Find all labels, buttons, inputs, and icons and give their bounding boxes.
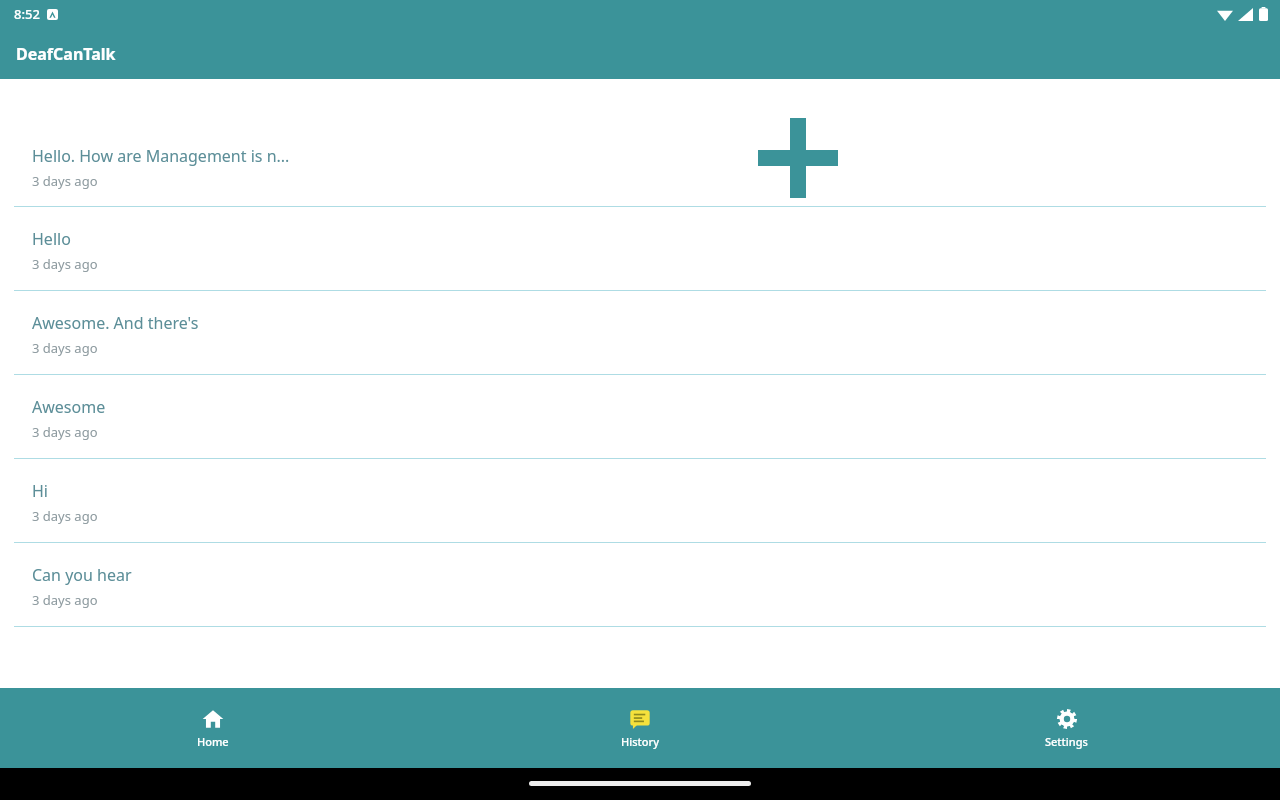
button[interactable]: New conversation xyxy=(758,118,838,198)
staticText: 8:52 xyxy=(14,5,40,23)
button[interactable]: Can you hear xyxy=(0,543,1280,627)
button[interactable]: Awesome. And there's xyxy=(0,291,1280,375)
staticText: Hello xyxy=(32,228,71,250)
button[interactable]: Settings xyxy=(853,688,1280,768)
staticText: Hello. How are Management is n... xyxy=(32,145,290,167)
staticText: 3 days ago xyxy=(32,172,98,190)
button[interactable]: Hi xyxy=(0,459,1280,543)
staticText: Hi xyxy=(32,480,48,502)
button[interactable]: Awesome xyxy=(0,375,1280,459)
staticText: Awesome. And there's xyxy=(32,312,199,334)
staticText: Awesome xyxy=(32,396,106,418)
staticText: 3 days ago xyxy=(32,423,98,441)
staticText: 3 days ago xyxy=(32,255,98,273)
button[interactable]: History xyxy=(426,688,853,768)
staticText: Can you hear xyxy=(32,564,132,586)
button[interactable]: Hello. How are Management is n... xyxy=(0,145,1280,207)
staticText: 3 days ago xyxy=(32,591,98,609)
button[interactable]: Home xyxy=(0,688,426,768)
staticText: Home xyxy=(197,734,229,749)
staticText: DeafCanTalk xyxy=(16,43,116,65)
staticText: 3 days ago xyxy=(32,507,98,525)
staticText: 3 days ago xyxy=(32,339,98,357)
staticText: History xyxy=(621,734,659,749)
staticText: Settings xyxy=(1045,734,1088,749)
button[interactable]: Hello xyxy=(0,207,1280,291)
